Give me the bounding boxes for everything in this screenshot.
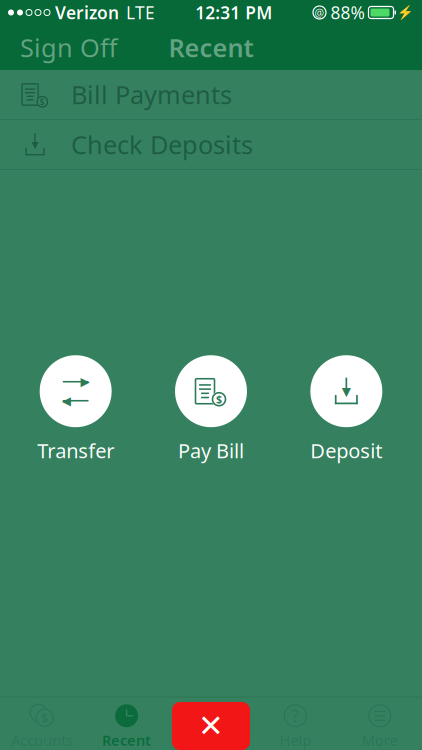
staticText: ? [291,704,299,727]
staticText: Recent [102,730,151,750]
staticText: ✕ [198,709,224,743]
staticText: Transfer [37,437,114,464]
staticText: @ [314,5,324,20]
staticText: $ [40,96,45,107]
staticText: ▼ [342,385,351,398]
staticText: Accounts [11,730,73,750]
staticText: Recent [168,31,253,64]
staticText: Sign Off [20,31,117,64]
staticText: Check Deposits [71,128,253,161]
staticText: Pay Bill [178,437,244,464]
staticText: ▼ [31,139,38,150]
button[interactable]: Close [172,702,250,750]
staticText: 12:31 PM [195,1,272,24]
button[interactable]: ▼ [310,355,382,464]
staticText: Verizon [55,1,119,24]
staticText: ▶ [80,375,89,388]
staticText: Help [279,730,311,750]
button[interactable]: $ [0,70,422,120]
staticText: Deposit [310,437,382,464]
staticText: ⚡ [397,5,414,20]
button[interactable]: ▼ [0,120,422,170]
staticText: LTE [126,1,155,24]
button[interactable]: ▶ [37,355,114,464]
button[interactable]: $ [175,355,247,464]
staticText: $ [216,392,222,406]
button[interactable]: Recent [84,697,169,750]
staticText: More [362,730,398,750]
button[interactable]: Sign Off [14,25,123,70]
staticText: 88% [330,1,364,24]
staticText: ◀ [62,394,71,407]
staticText: $ [41,709,49,727]
staticText: Bill Payments [71,78,232,111]
